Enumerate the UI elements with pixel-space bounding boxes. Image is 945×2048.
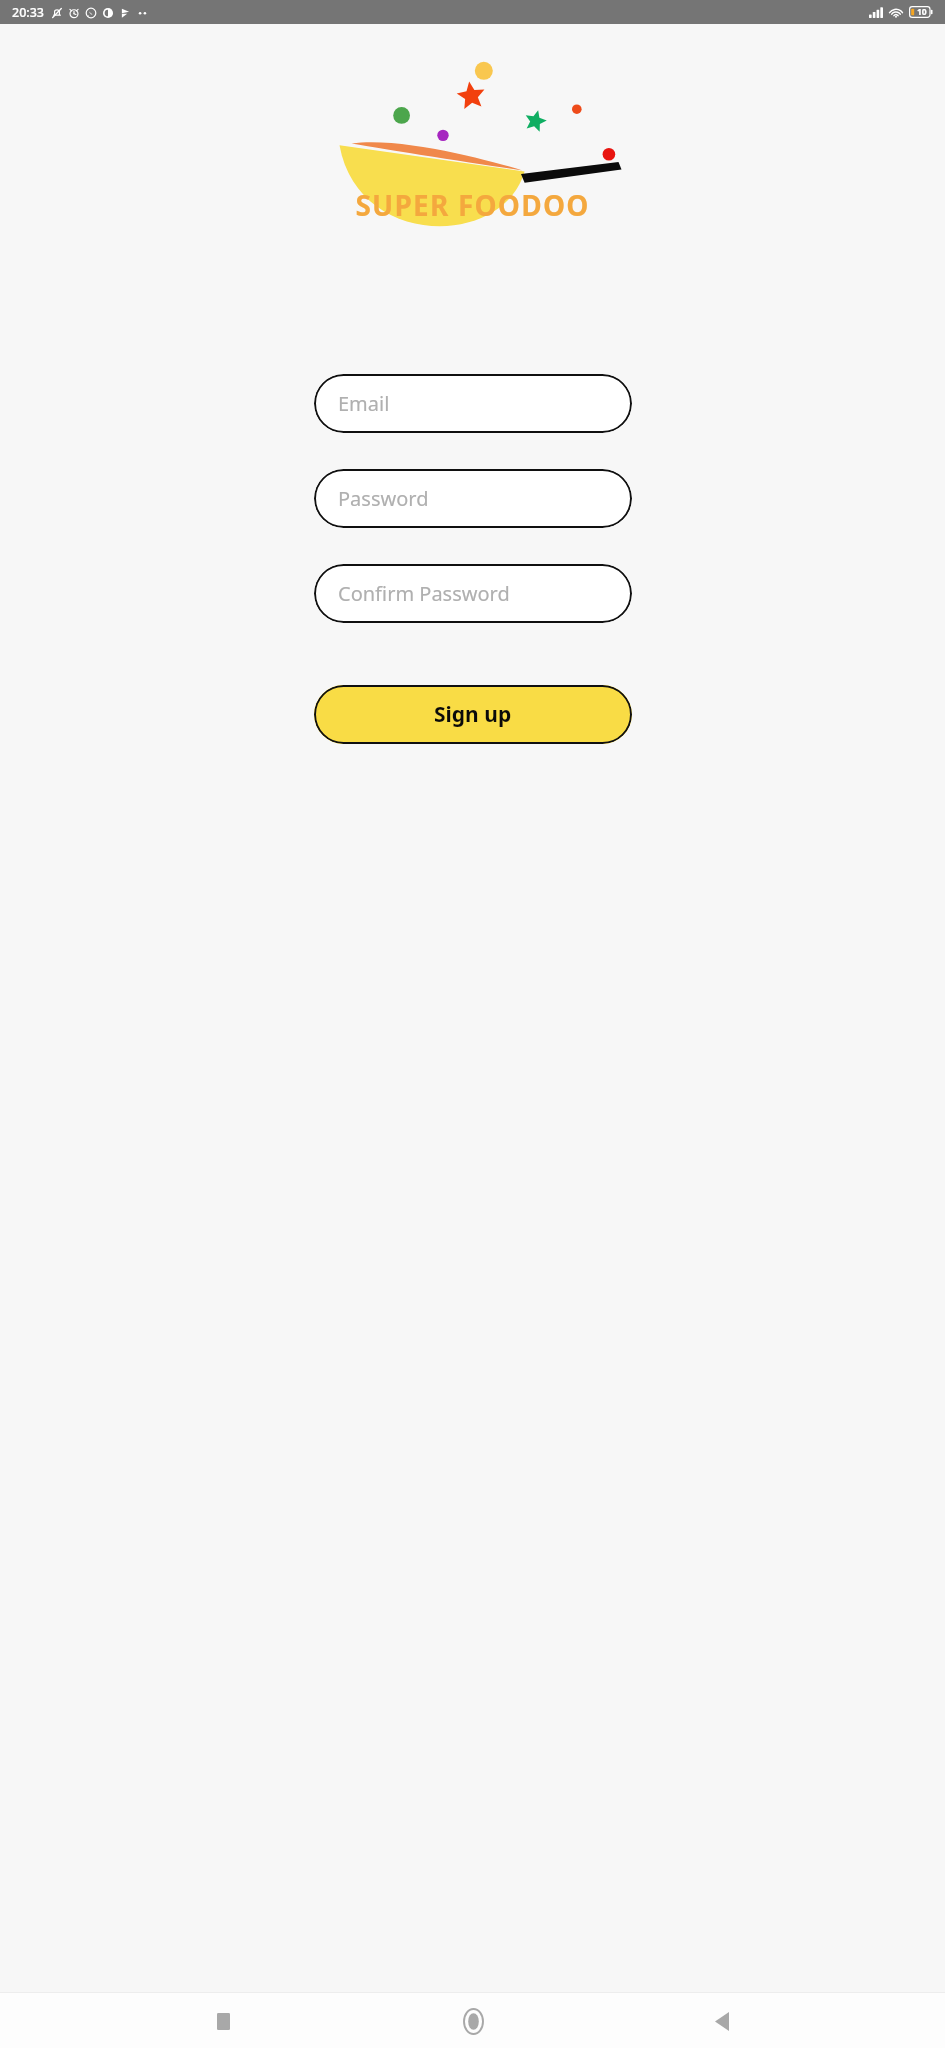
staticText: Confirm Password <box>338 580 510 607</box>
button[interactable]: Sign up <box>314 685 632 744</box>
button[interactable]: Back <box>696 1995 748 2047</box>
staticText: 20:33 <box>12 4 45 21</box>
staticText: Sign up <box>434 700 512 729</box>
staticText: SUPER FOODOO <box>355 186 590 224</box>
button[interactable]: Recent apps <box>197 1995 249 2047</box>
button[interactable]: Confirm Password <box>314 564 632 623</box>
button[interactable]: Email <box>314 374 632 433</box>
staticText: Email <box>338 390 390 417</box>
button[interactable]: Home <box>447 1995 499 2047</box>
button[interactable]: Password <box>314 469 632 528</box>
staticText: Password <box>338 485 429 512</box>
staticText: 10 <box>917 6 927 18</box>
